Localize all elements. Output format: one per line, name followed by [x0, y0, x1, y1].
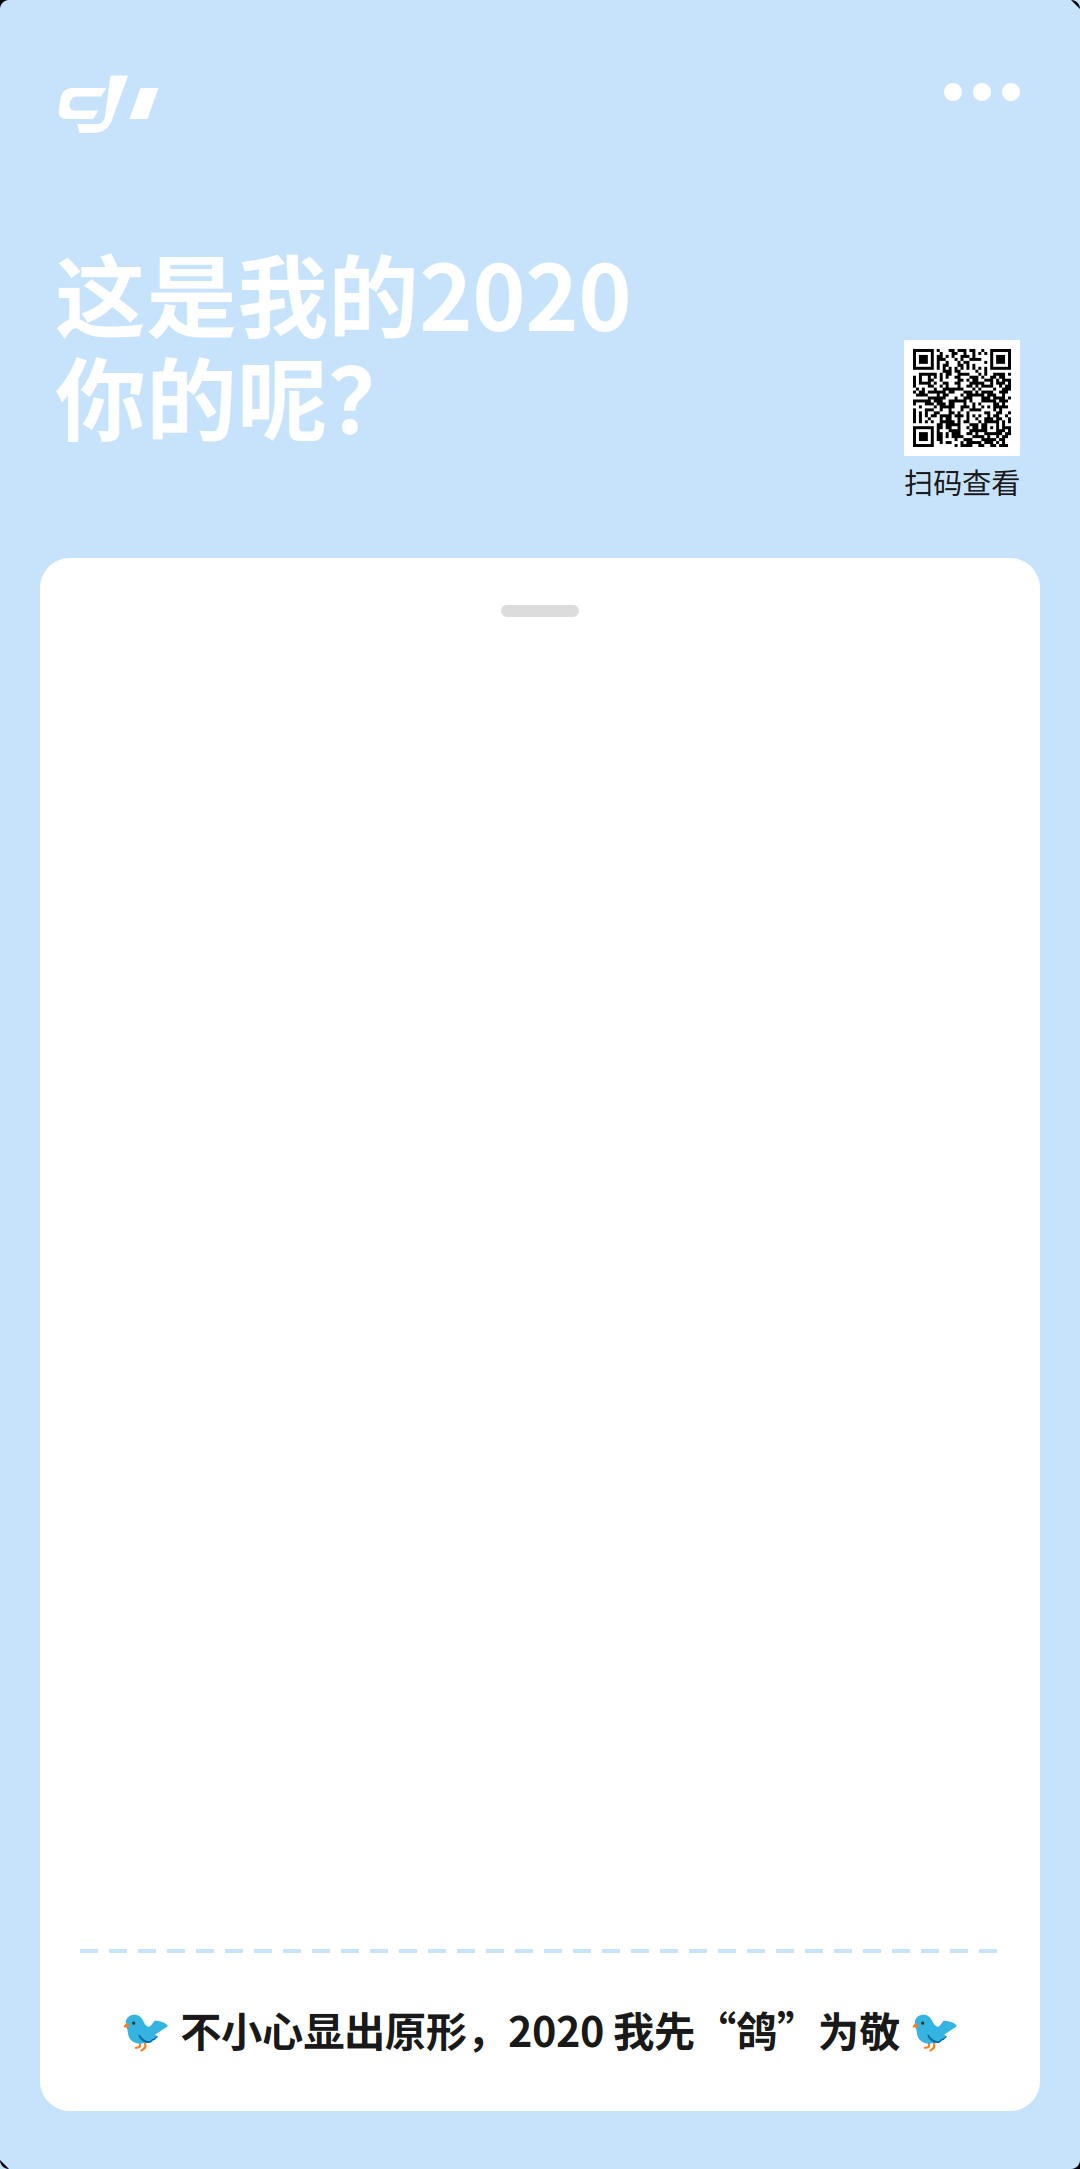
button[interactable]: DJI: [40, 59, 180, 149]
button[interactable]: More options: [928, 67, 1036, 117]
staticText: 扫码查看: [904, 460, 1020, 502]
staticText: 你的呢？: [55, 329, 419, 460]
button[interactable]: Scan QR code to view: [904, 340, 1020, 502]
staticText: 🐦 不小心显出原形，2020 我先“鸽”为敬 🐦: [120, 1999, 960, 2059]
staticText: 这是我的2020: [55, 226, 631, 357]
button[interactable]: Drag to resize sheet: [479, 583, 601, 639]
